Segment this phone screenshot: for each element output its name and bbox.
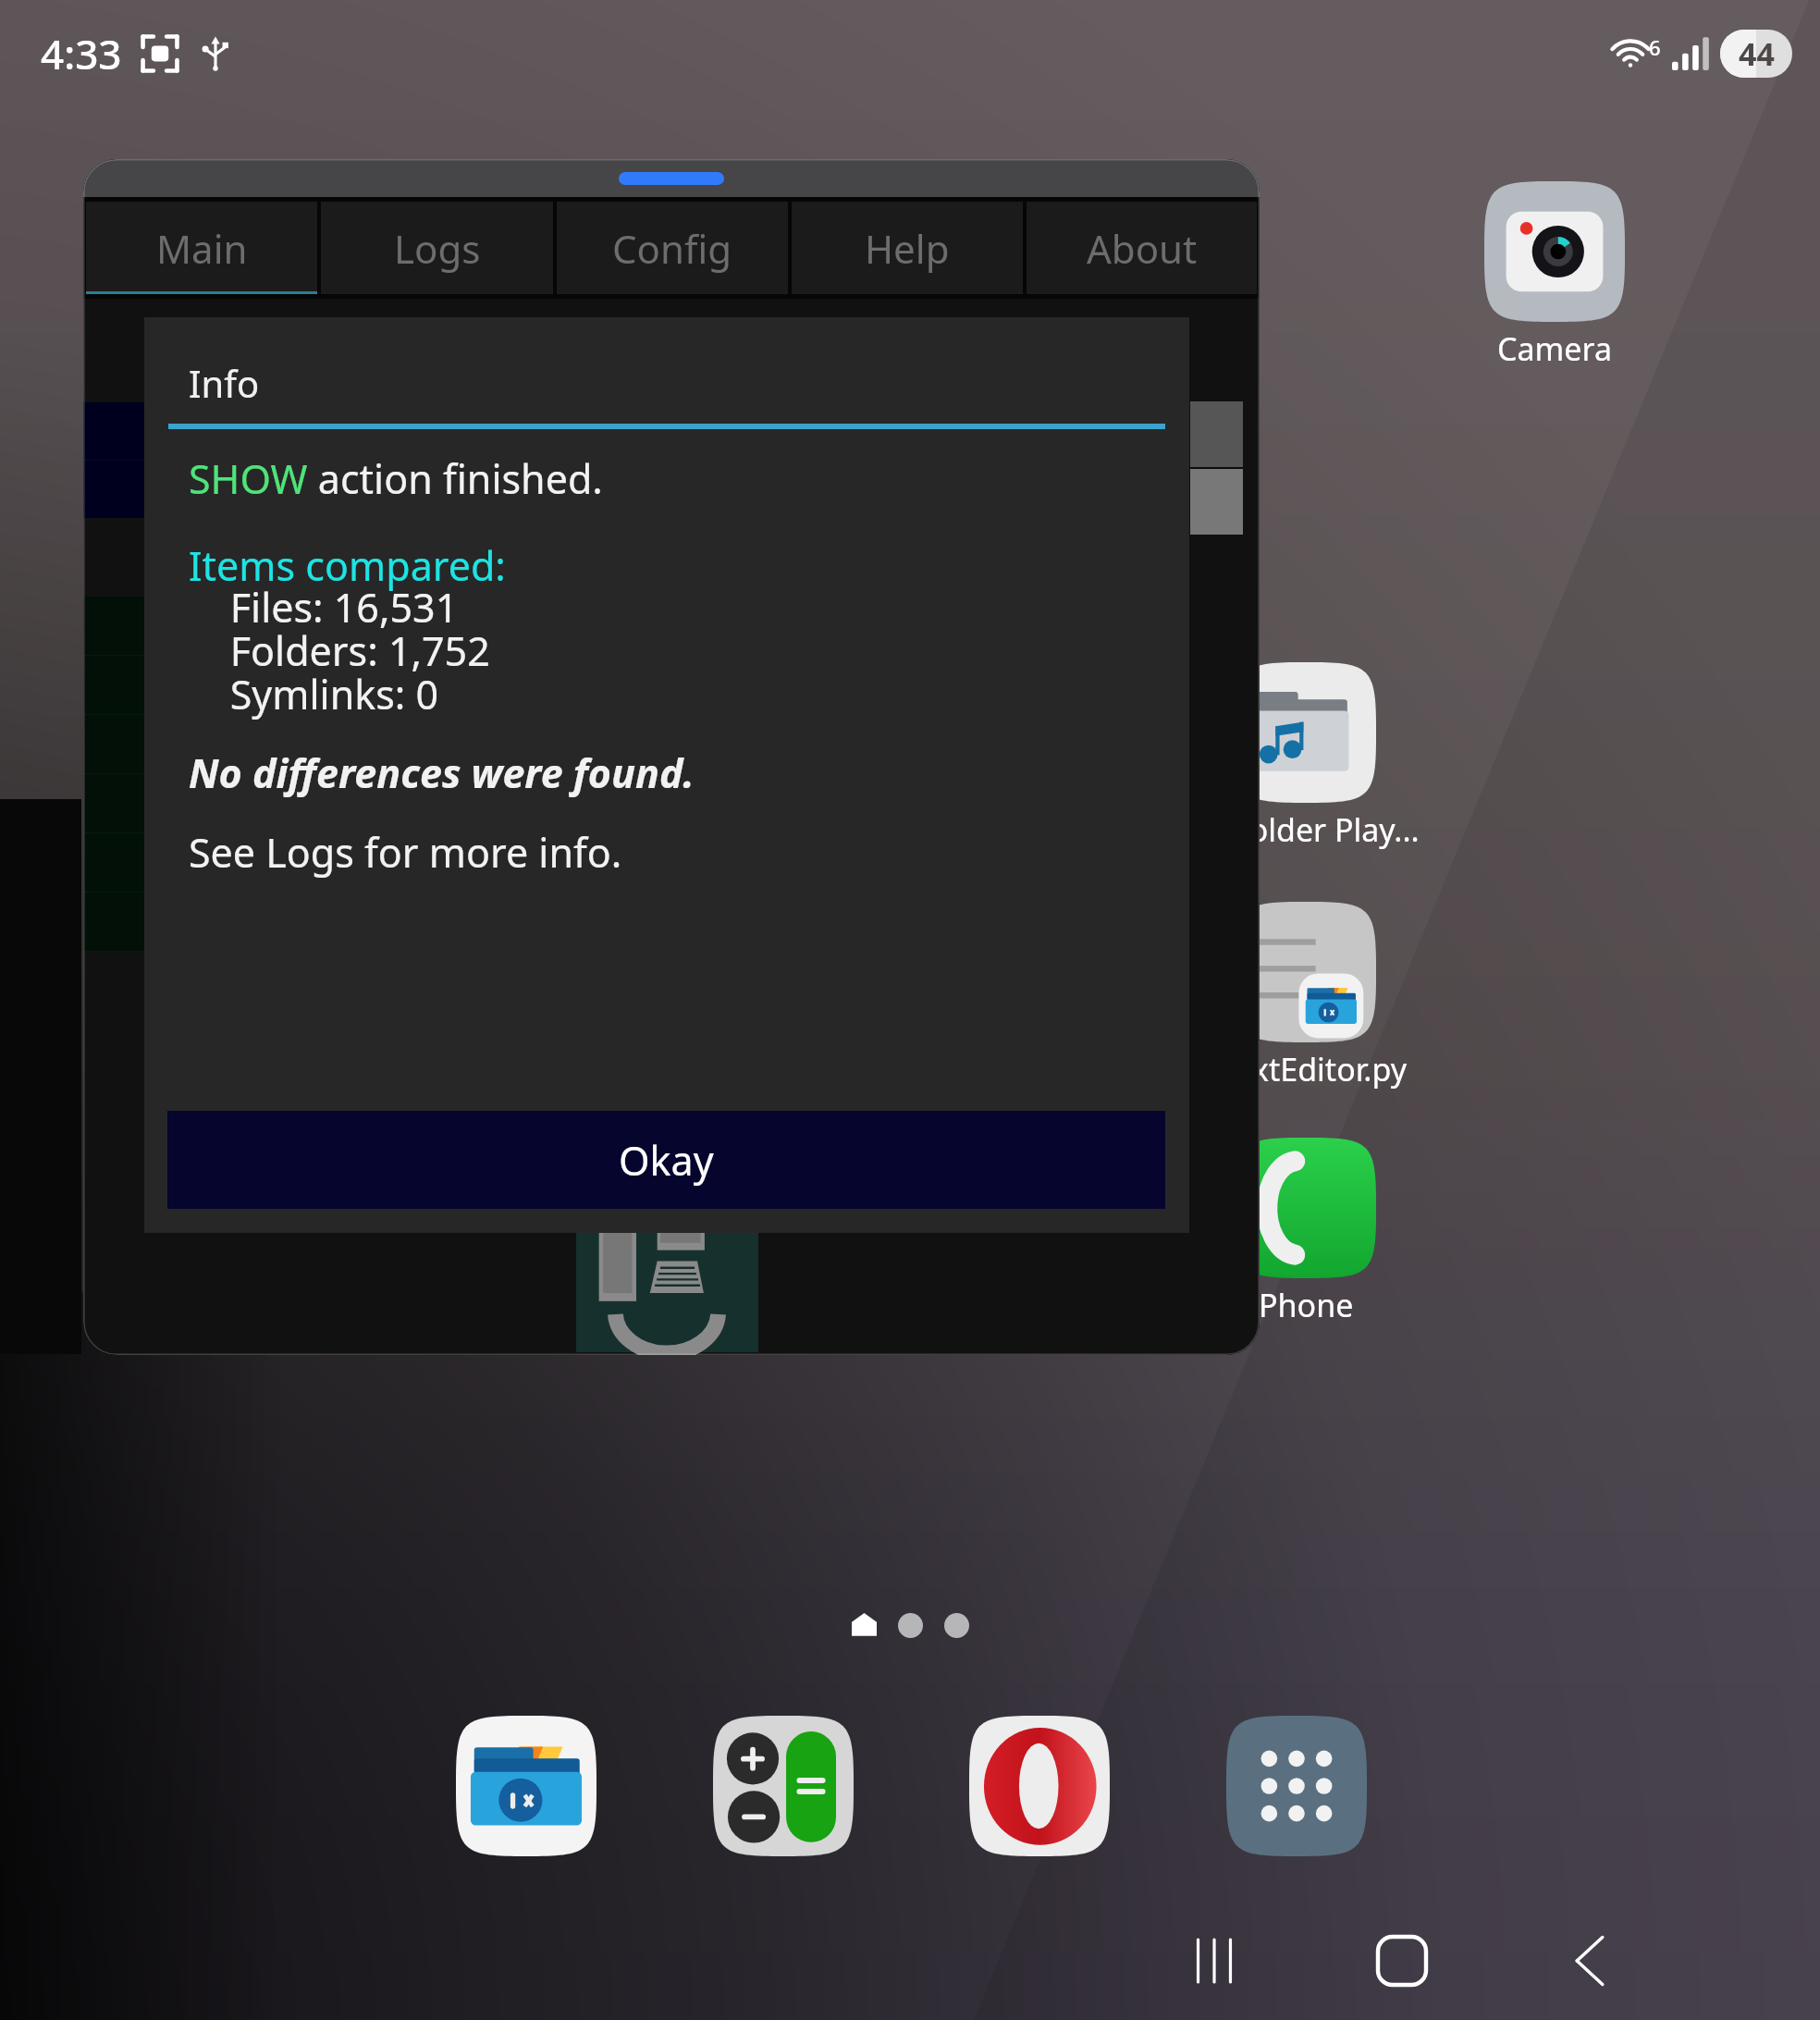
- staticText: 6: [1649, 33, 1661, 61]
- staticText: Camera: [1497, 327, 1612, 370]
- button[interactable]: Camera: [1484, 181, 1625, 322]
- button[interactable]: Config: [557, 202, 788, 294]
- staticText: Files: 16,531 Folders: 1,752 Symlinks: 0: [189, 580, 490, 721]
- staticText: 44: [1739, 32, 1775, 75]
- staticText: Folder Play...: [1233, 808, 1420, 851]
- button[interactable]: Phone: [1236, 1138, 1376, 1278]
- button[interactable]: Page 3: [944, 1613, 969, 1638]
- staticText: Okay: [619, 1133, 714, 1188]
- button[interactable]: Help: [792, 202, 1023, 294]
- button[interactable]: Opera: [969, 1716, 1110, 1856]
- staticText: Config: [612, 222, 732, 275]
- button[interactable]: TextEditor.py: [1236, 902, 1376, 1042]
- staticText: Items compared:: [189, 538, 506, 593]
- button[interactable]: Folder Player: [1236, 662, 1376, 803]
- staticText: No differences were found.: [189, 745, 695, 800]
- button[interactable]: Page 2: [898, 1613, 923, 1638]
- button[interactable]: Logs: [321, 202, 553, 294]
- staticText: Phone: [1259, 1284, 1354, 1326]
- staticText: See Logs for more info.: [189, 825, 622, 880]
- button[interactable]: Home: [1347, 1906, 1457, 2015]
- button[interactable]: Okay: [167, 1111, 1165, 1209]
- button[interactable]: About: [1027, 202, 1257, 294]
- staticText: 4:33: [41, 26, 122, 81]
- staticText: SHOW action finished.: [189, 451, 603, 506]
- button[interactable]: Apps: [1226, 1716, 1367, 1856]
- staticText: Logs: [394, 222, 481, 275]
- staticText: TextEditor.py: [1220, 1048, 1407, 1090]
- staticText: Help: [865, 222, 950, 275]
- staticText: About: [1087, 222, 1198, 275]
- button[interactable]: CX File Explorer: [456, 1716, 596, 1856]
- button[interactable]: Back: [1535, 1906, 1644, 2015]
- button[interactable]: Calculator: [713, 1716, 854, 1856]
- button[interactable]: Home screen: [852, 1613, 877, 1638]
- button[interactable]: Recents: [1160, 1906, 1269, 2015]
- staticText: Main: [156, 222, 248, 275]
- staticText: Info: [189, 358, 260, 408]
- button[interactable]: Main: [86, 202, 317, 294]
